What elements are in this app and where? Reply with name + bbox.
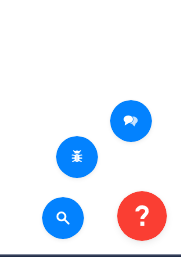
button[interactable]: Help — [117, 191, 167, 241]
button[interactable]: Search — [42, 197, 84, 239]
button[interactable]: Chat — [110, 100, 152, 142]
button[interactable]: Report a bug — [56, 136, 98, 178]
